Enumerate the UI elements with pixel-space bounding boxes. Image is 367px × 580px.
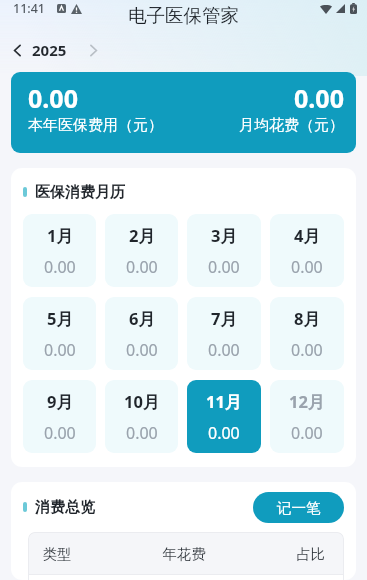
- staticText: 1月: [47, 224, 73, 247]
- button[interactable]: 2月: [105, 214, 178, 287]
- button[interactable]: Next year: [83, 40, 103, 60]
- button[interactable]: 3月: [187, 214, 261, 287]
- staticText: 占比: [234, 545, 325, 563]
- staticText: 9月: [47, 390, 73, 413]
- staticText: 电子医保管家: [128, 4, 239, 27]
- staticText: 4月: [294, 224, 320, 247]
- staticText: 医保消费月历: [35, 183, 125, 202]
- staticText: 0.00: [294, 81, 344, 115]
- staticText: 记一笔: [277, 499, 321, 517]
- staticText: 0.00: [44, 422, 76, 444]
- staticText: 0.00: [44, 256, 76, 278]
- staticText: 3月: [211, 224, 237, 247]
- staticText: 类型: [43, 545, 134, 563]
- staticText: 0.00: [208, 339, 240, 361]
- button[interactable]: 11月: [187, 380, 261, 453]
- button[interactable]: 记一笔: [253, 492, 344, 523]
- button[interactable]: 1月: [23, 214, 96, 287]
- button[interactable]: 6月: [105, 297, 178, 370]
- staticText: 消费总览: [35, 498, 95, 517]
- staticText: 12月: [289, 390, 325, 413]
- staticText: 0.00: [126, 422, 158, 444]
- staticText: 0.00: [126, 339, 158, 361]
- staticText: 11月: [206, 390, 242, 413]
- staticText: 11:41: [13, 0, 46, 17]
- staticText: 0.00: [208, 422, 240, 444]
- staticText: 0.00: [126, 256, 158, 278]
- staticText: 0.00: [291, 339, 323, 361]
- button[interactable]: 7月: [187, 297, 261, 370]
- button[interactable]: 4月: [270, 214, 344, 287]
- button[interactable]: 12月: [270, 380, 344, 453]
- staticText: 5月: [47, 307, 73, 330]
- button[interactable]: 0.00: [11, 72, 356, 153]
- button[interactable]: 5月: [23, 297, 96, 370]
- button[interactable]: 10月: [105, 380, 178, 453]
- staticText: 0.00: [28, 81, 78, 115]
- staticText: 2025: [32, 40, 67, 60]
- staticText: 月均花费（元）: [239, 116, 344, 135]
- staticText: 10月: [124, 390, 160, 413]
- staticText: 0.00: [44, 339, 76, 361]
- staticText: 0.00: [208, 256, 240, 278]
- staticText: 0.00: [291, 256, 323, 278]
- button[interactable]: 8月: [270, 297, 344, 370]
- staticText: 6月: [129, 307, 155, 330]
- staticText: 8月: [294, 307, 320, 330]
- staticText: 年花费: [134, 545, 234, 563]
- staticText: 2月: [129, 224, 155, 247]
- staticText: 7月: [211, 307, 237, 330]
- button[interactable]: 9月: [23, 380, 96, 453]
- staticText: 0.00: [291, 422, 323, 444]
- staticText: 本年医保费用（元）: [28, 116, 163, 135]
- button[interactable]: Previous year: [7, 40, 27, 60]
